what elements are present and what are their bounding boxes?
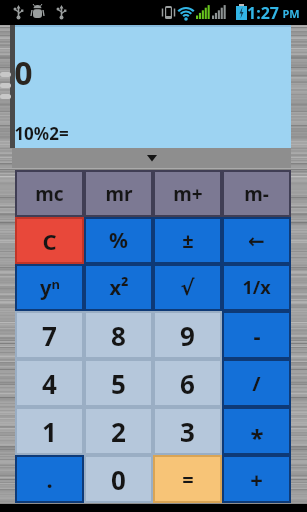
button[interactable]: 5 bbox=[86, 361, 151, 405]
staticText: yⁿ bbox=[40, 274, 60, 301]
staticText: - bbox=[253, 320, 261, 350]
staticText: . bbox=[46, 464, 53, 494]
button[interactable]: m+ bbox=[155, 172, 220, 215]
button[interactable]: 1/x bbox=[224, 266, 289, 309]
button[interactable]: yⁿ bbox=[17, 266, 82, 309]
staticText: m- bbox=[244, 181, 269, 207]
staticText: 1:27 bbox=[247, 2, 279, 24]
button[interactable]: 2 bbox=[86, 409, 151, 453]
button[interactable]: 6 bbox=[155, 361, 220, 405]
staticText: 7 bbox=[42, 318, 57, 353]
staticText: 0 bbox=[14, 51, 33, 95]
button[interactable]: / bbox=[224, 361, 289, 405]
button[interactable]: % bbox=[86, 219, 151, 262]
staticText: 0 bbox=[111, 462, 126, 497]
staticText: 1 bbox=[42, 414, 57, 449]
staticText: PM bbox=[282, 6, 300, 21]
button[interactable]: mr bbox=[86, 172, 151, 215]
button[interactable]: 0 bbox=[15, 25, 291, 148]
button[interactable]: ± bbox=[155, 219, 220, 262]
button[interactable]: √ bbox=[155, 266, 220, 309]
button[interactable]: = bbox=[155, 457, 220, 501]
button[interactable]: . bbox=[17, 457, 82, 501]
button[interactable]: * bbox=[224, 409, 289, 453]
staticText: 5 bbox=[111, 366, 126, 401]
staticText: 9 bbox=[180, 318, 195, 353]
staticText: 1/x bbox=[242, 275, 271, 300]
staticText: 2 bbox=[111, 414, 126, 449]
staticText: 3 bbox=[180, 414, 195, 449]
button[interactable]: 3 bbox=[155, 409, 220, 453]
button[interactable]: 1 bbox=[17, 409, 82, 453]
staticText: + bbox=[250, 464, 263, 494]
staticText: % bbox=[109, 226, 128, 255]
button[interactable]: C bbox=[17, 219, 82, 262]
button[interactable]: + bbox=[224, 457, 289, 501]
button[interactable]: 7 bbox=[17, 313, 82, 357]
button[interactable]: 4 bbox=[17, 361, 82, 405]
staticText: / bbox=[252, 370, 261, 397]
staticText: ← bbox=[248, 229, 265, 252]
staticText: mr bbox=[105, 181, 133, 207]
staticText: m+ bbox=[173, 181, 203, 207]
staticText: √ bbox=[180, 276, 195, 300]
staticText: mc bbox=[35, 181, 64, 207]
button[interactable]: - bbox=[224, 313, 289, 357]
staticText: ± bbox=[182, 227, 194, 254]
staticText: x² bbox=[109, 274, 129, 301]
button[interactable]: 9 bbox=[155, 313, 220, 357]
button[interactable]: 8 bbox=[86, 313, 151, 357]
button[interactable]: mc bbox=[17, 172, 82, 215]
staticText: 10%2= bbox=[14, 122, 69, 145]
staticText: = bbox=[182, 466, 194, 493]
button[interactable]: x² bbox=[86, 266, 151, 309]
staticText: 8 bbox=[111, 318, 126, 353]
button[interactable]: ← bbox=[224, 219, 289, 262]
button[interactable] bbox=[12, 148, 291, 168]
button[interactable]: 0 bbox=[86, 457, 151, 501]
staticText: 6 bbox=[180, 366, 195, 401]
staticText: C bbox=[42, 226, 57, 256]
button[interactable]: m- bbox=[224, 172, 289, 215]
staticText: * bbox=[250, 421, 264, 454]
staticText: 4 bbox=[42, 366, 57, 401]
